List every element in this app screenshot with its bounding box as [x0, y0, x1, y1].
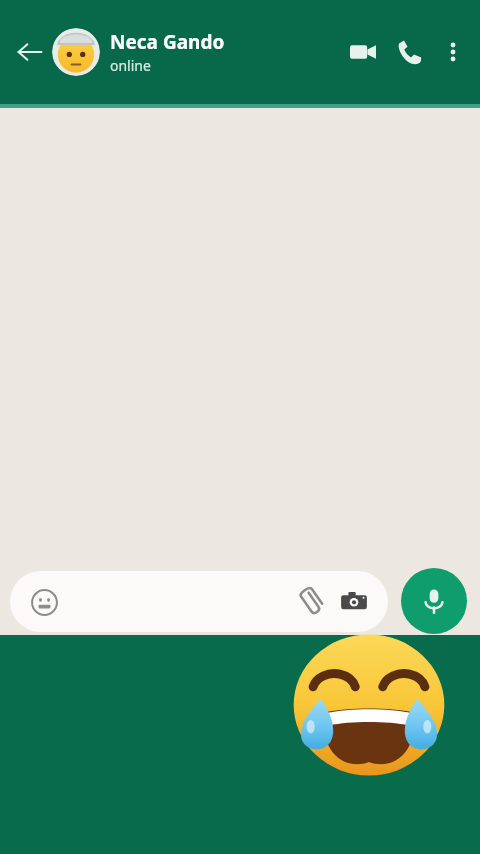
button[interactable]: Voice message	[401, 568, 467, 634]
button[interactable]: More options	[432, 31, 474, 73]
button[interactable]: Call	[386, 29, 432, 75]
button[interactable]: Back	[8, 30, 52, 74]
staticText: online	[110, 56, 151, 75]
button[interactable]: Neca Gando	[110, 29, 340, 75]
staticText: Neca Gando	[110, 29, 225, 55]
button[interactable]: Camera	[332, 580, 376, 624]
button[interactable]: Attach	[288, 580, 332, 624]
button[interactable]: Video call	[340, 29, 386, 75]
button[interactable]: Emoji	[10, 571, 388, 632]
button[interactable]: Emoji	[24, 582, 64, 622]
button[interactable]: Contact photo	[52, 28, 100, 76]
